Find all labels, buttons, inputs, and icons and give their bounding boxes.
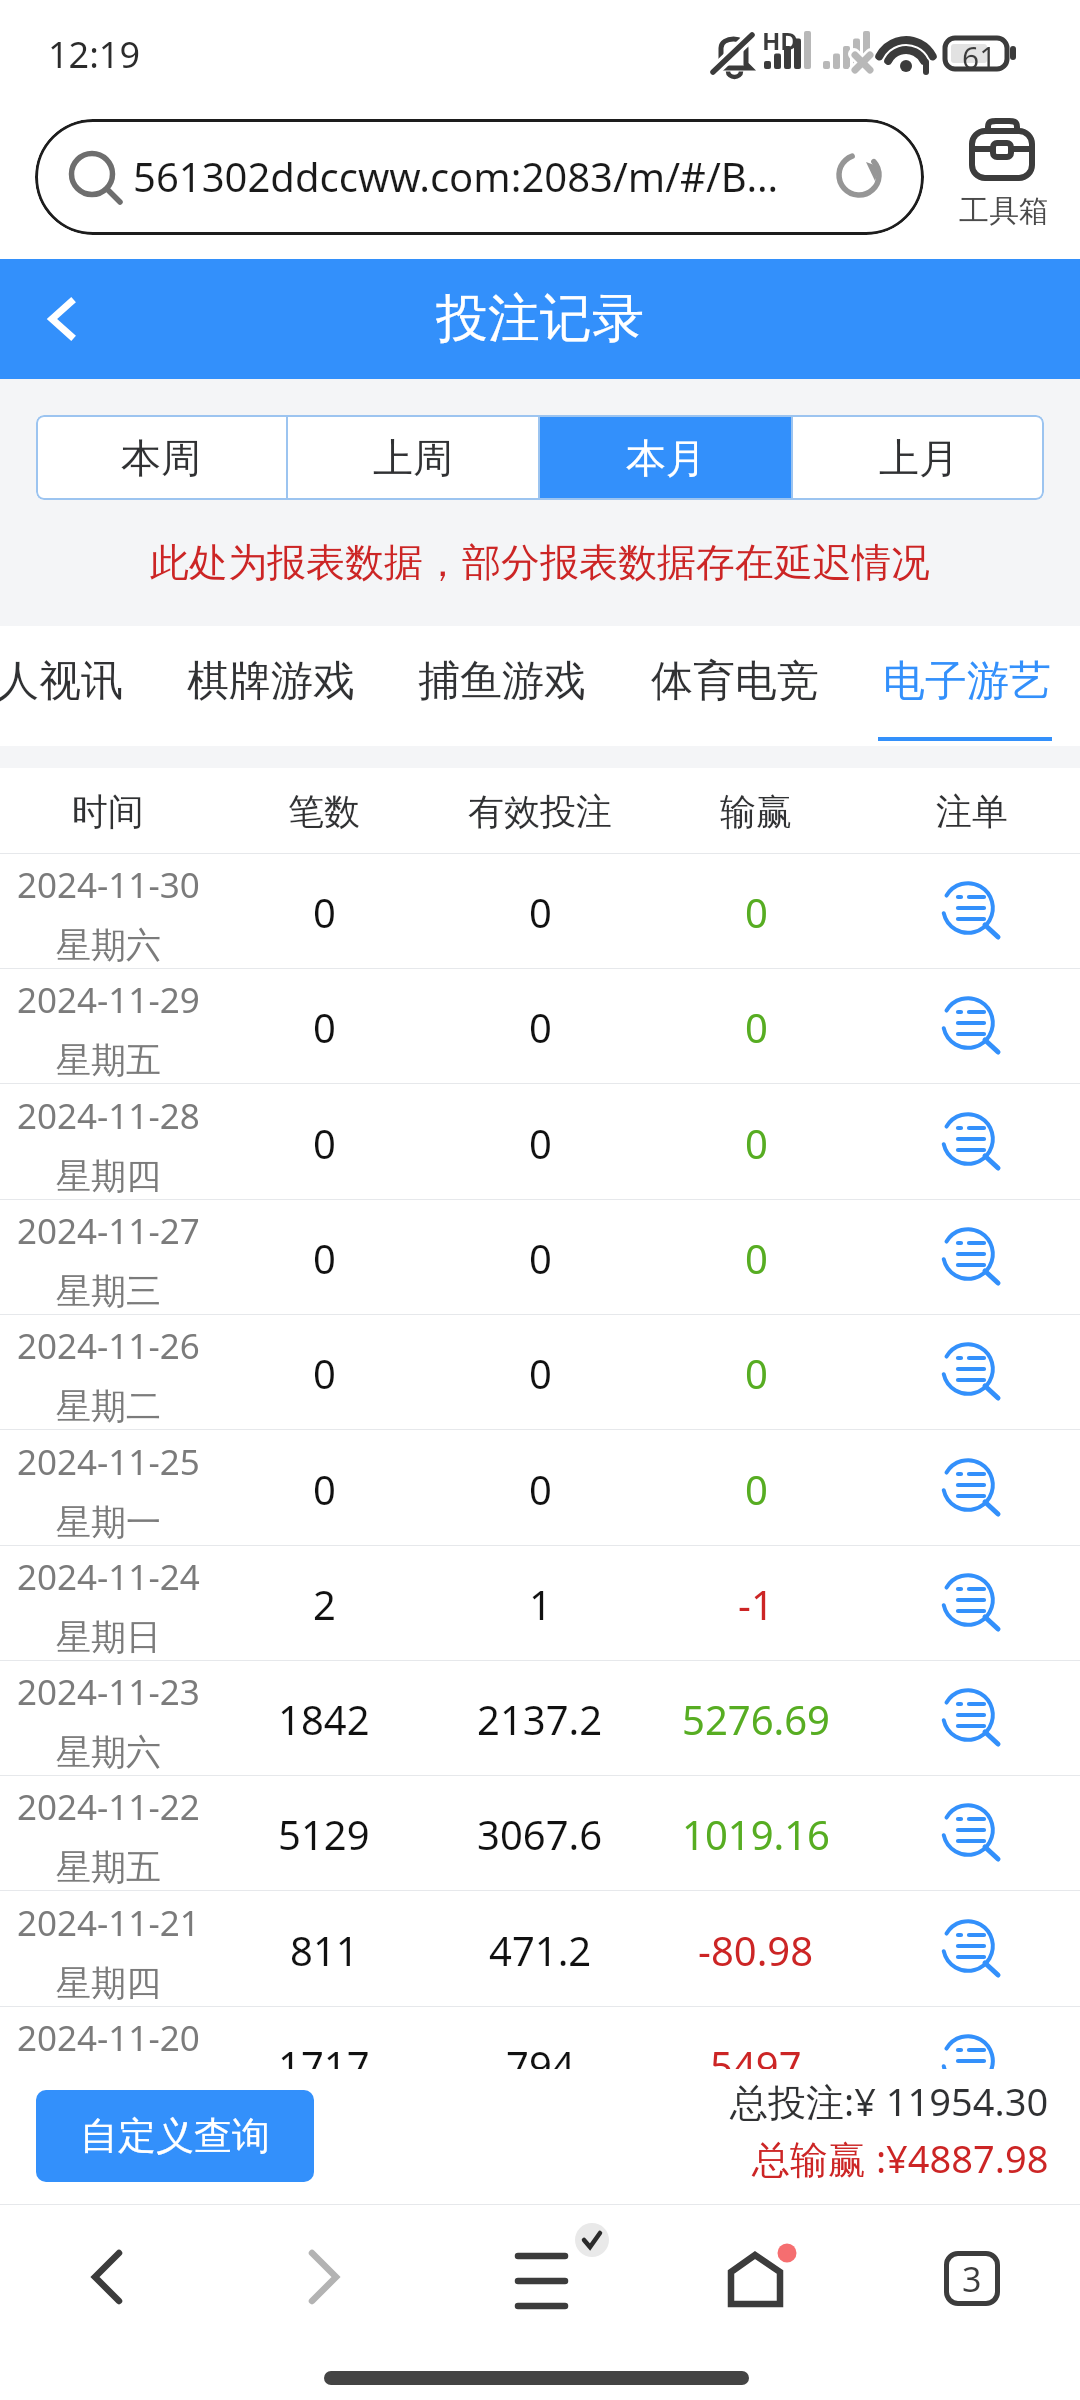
button[interactable]: 菜单 (495, 2206, 625, 2330)
staticText: 2137.2 (477, 1692, 603, 1746)
staticText: 星期六 (56, 1730, 161, 1774)
staticText: 星期五 (56, 1038, 161, 1082)
button[interactable]: 后退 (47, 2223, 167, 2331)
button[interactable]: 查看注单 (864, 1200, 1080, 1315)
button[interactable]: 2024-11-26 (0, 1315, 1080, 1430)
staticText: 12:19 (48, 30, 141, 79)
staticText: 794 (506, 2038, 575, 2069)
button[interactable]: 查看注单 (864, 1892, 1080, 2007)
staticText: 0 (745, 1116, 768, 1170)
button[interactable]: 真人视讯 (0, 626, 132, 736)
button[interactable]: 查看注单 (864, 1546, 1080, 1661)
staticText: 2024-11-29 (17, 976, 200, 1024)
staticText: 真人视讯 (0, 655, 123, 708)
staticText: 811 (290, 1923, 359, 1977)
button[interactable]: 上月 (793, 415, 1044, 500)
button[interactable]: 2024-11-24 (0, 1546, 1080, 1661)
button[interactable]: 电子游艺 (874, 626, 1060, 736)
staticText: 注单 (936, 789, 1008, 834)
staticText: 0 (529, 1116, 552, 1170)
staticText: 0 (529, 1462, 552, 1516)
staticText: 本周 (121, 433, 201, 483)
button[interactable]: 2024-11-23 (0, 1661, 1080, 1776)
staticText: 体育电竞 (651, 655, 819, 708)
staticText: 捕鱼游戏 (418, 655, 586, 708)
staticText: 星期日 (56, 1615, 161, 1659)
staticText: 总输赢 :¥4887.98 (752, 2132, 1049, 2184)
button[interactable]: 2024-11-28 (0, 1085, 1080, 1200)
staticText: 61 (962, 37, 997, 78)
staticText: HD (762, 24, 798, 57)
staticText: 2 (313, 1577, 336, 1631)
button[interactable]: 查看注单 (864, 1776, 1080, 1891)
staticText: 0 (529, 1231, 552, 1285)
button[interactable]: 查看注单 (864, 2007, 1080, 2069)
staticText: 时间 (72, 789, 144, 834)
staticText: 1717 (278, 2038, 370, 2069)
staticText: 星期四 (56, 1961, 161, 2005)
staticText: 0 (313, 1462, 336, 1516)
staticText: 星期三 (56, 1269, 161, 1313)
button[interactable]: 561302ddccww.com:2083/m/#/B… (35, 119, 924, 235)
staticText: 自定义查询 (80, 2112, 270, 2160)
button[interactable]: 本月 (540, 415, 791, 500)
staticText: 561302ddccww.com:2083/m/#/B… (133, 149, 779, 203)
staticText: 5276.69 (682, 1692, 830, 1746)
staticText: -80.98 (698, 1923, 814, 1977)
staticText: 本月 (626, 433, 706, 483)
button[interactable]: 查看注单 (864, 854, 1080, 969)
staticText: 1019.16 (682, 1807, 830, 1861)
button[interactable]: 前进 (264, 2223, 384, 2331)
staticText: 上周 (373, 433, 453, 483)
button[interactable]: 2024-11-20 (0, 2007, 1080, 2069)
button[interactable]: 棋牌游戏 (178, 626, 364, 736)
staticText: 工具箱 (959, 192, 1049, 230)
staticText: 1 (529, 1577, 552, 1631)
staticText: 0 (745, 1000, 768, 1054)
button[interactable]: 2024-11-25 (0, 1431, 1080, 1546)
staticText: 3 (962, 2256, 982, 2302)
button[interactable]: 捕鱼游戏 (409, 626, 595, 736)
staticText: 投注记录 (436, 286, 644, 352)
button[interactable]: 查看注单 (864, 1661, 1080, 1776)
staticText: 总投注:¥ 11954.30 (730, 2075, 1049, 2127)
staticText: 2024-11-28 (17, 1092, 200, 1140)
staticText: 2024-11-21 (17, 1899, 200, 1947)
button[interactable]: 返回 (0, 259, 122, 379)
button[interactable]: 上周 (288, 415, 538, 500)
staticText: 0 (529, 885, 552, 939)
button[interactable]: 自定义查询 (36, 2090, 314, 2182)
staticText: 0 (529, 1346, 552, 1400)
staticText: 0 (313, 1000, 336, 1054)
staticText: 0 (313, 885, 336, 939)
staticText: 471.2 (489, 1923, 592, 1977)
staticText: -1 (738, 1577, 774, 1631)
button[interactable]: 本周 (36, 415, 286, 500)
button[interactable]: 2024-11-29 (0, 969, 1080, 1084)
staticText: 2024-11-20 (17, 2014, 200, 2062)
staticText: 此处为报表数据，部分报表数据存在延迟情况 (0, 538, 1080, 587)
button[interactable]: 主页 (712, 2221, 822, 2337)
staticText: 星期一 (56, 1500, 161, 1544)
staticText: 0 (745, 1346, 768, 1400)
button[interactable]: 2024-11-30 (0, 854, 1080, 969)
staticText: 笔数 (288, 789, 360, 834)
staticText: 有效投注 (468, 789, 612, 834)
button[interactable]: 查看注单 (864, 1085, 1080, 1200)
staticText: 2024-11-30 (17, 861, 200, 909)
staticText: 0 (313, 1346, 336, 1400)
button[interactable]: 查看注单 (864, 1431, 1080, 1546)
button[interactable]: 2024-11-21 (0, 1892, 1080, 2007)
button[interactable]: 2024-11-22 (0, 1776, 1080, 1891)
button[interactable]: 查看注单 (864, 969, 1080, 1084)
staticText: 5497 (710, 2038, 802, 2069)
button[interactable]: 查看注单 (864, 1315, 1080, 1430)
button[interactable]: 2024-11-27 (0, 1200, 1080, 1315)
button[interactable]: 工具箱 (948, 100, 1058, 259)
staticText: 2024-11-25 (17, 1438, 200, 1486)
button[interactable]: 标签页 3 (912, 2224, 1032, 2332)
staticText: 0 (745, 885, 768, 939)
button[interactable]: 体育电竞 (642, 626, 828, 736)
staticText: 1842 (278, 1692, 370, 1746)
staticText: 0 (745, 1462, 768, 1516)
